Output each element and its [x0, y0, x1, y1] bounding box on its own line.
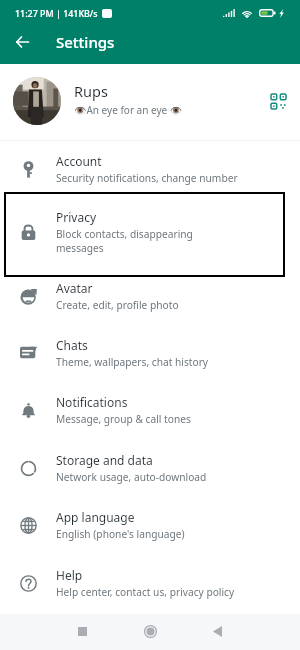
staticText: Rups: [74, 81, 108, 101]
button[interactable]: QR code: [262, 85, 294, 117]
staticText: Theme, wallpapers, chat history: [56, 355, 209, 369]
staticText: Help: [56, 567, 83, 583]
button[interactable]: Rups: [0, 64, 300, 140]
staticText: Create, edit, profile photo: [56, 298, 179, 312]
staticText: Message, group & call tones: [56, 412, 191, 426]
button[interactable]: Home: [130, 614, 170, 650]
staticText: Block contacts, disappearing messages: [56, 227, 193, 255]
button[interactable]: Back: [197, 614, 237, 650]
staticText: Chats: [56, 337, 88, 353]
staticText: Notifications: [56, 394, 128, 410]
staticText: Settings: [56, 32, 115, 52]
staticText: Privacy: [56, 209, 97, 225]
staticText: Security notifications, change number: [56, 171, 238, 185]
staticText: Account: [56, 153, 102, 169]
button[interactable]: Notifications: [0, 381, 300, 439]
button[interactable]: Back: [0, 26, 44, 58]
staticText: Help center, contact us, privacy policy: [56, 585, 235, 599]
button[interactable]: Account: [0, 141, 300, 197]
button[interactable]: App language: [0, 496, 300, 554]
staticText: Avatar: [56, 280, 93, 296]
staticText: English (phone's language): [56, 527, 185, 541]
staticText: Storage and data: [56, 452, 153, 468]
staticText: 11:27 PM | 141KB/s: [15, 7, 98, 19]
button[interactable]: Avatar: [0, 267, 300, 324]
staticText: App language: [56, 509, 135, 525]
staticText: Network usage, auto-download: [56, 470, 207, 484]
button[interactable]: Storage and data: [0, 439, 300, 496]
button[interactable]: Help: [0, 554, 300, 611]
button[interactable]: Privacy: [0, 197, 300, 267]
button[interactable]: Recents: [62, 614, 102, 650]
staticText: 👁An eye for an eye 👁: [74, 103, 183, 117]
button[interactable]: Chats: [0, 324, 300, 381]
